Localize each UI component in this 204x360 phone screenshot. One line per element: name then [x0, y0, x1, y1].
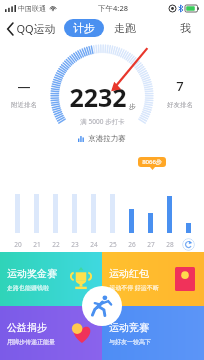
staticText: 中国联通	[18, 4, 46, 13]
staticText: 运动不停 好运不断	[109, 284, 159, 292]
staticText: 2232	[69, 80, 127, 114]
button[interactable]: 我	[177, 19, 194, 37]
staticText: 满 5000 步打卡	[80, 117, 125, 126]
staticText: —	[17, 77, 31, 95]
button[interactable]: 公益捐步	[0, 306, 102, 360]
staticText: 24	[90, 240, 98, 249]
staticText: 计步	[73, 21, 95, 35]
staticText: 运动竞赛	[109, 321, 149, 334]
staticText: 走路也能赚钱啦	[7, 284, 49, 292]
staticText: 运动红包	[109, 267, 149, 280]
staticText: 公益捐步	[7, 321, 47, 334]
staticText: 20	[14, 240, 22, 249]
staticText: 京港拉力赛	[88, 134, 126, 143]
staticText: 23	[71, 240, 79, 249]
button[interactable]: 计步	[64, 19, 104, 37]
staticText: 7	[176, 77, 184, 95]
staticText: 28	[166, 240, 174, 249]
staticText: 用脚步传递正能量	[7, 338, 55, 346]
button[interactable]: 走跑	[111, 19, 139, 37]
staticText: 我	[180, 21, 191, 35]
staticText: 22	[52, 240, 60, 249]
staticText: 26	[128, 240, 136, 249]
staticText: 附近排名	[11, 101, 37, 109]
button[interactable]: Start running	[82, 286, 122, 326]
staticText: 21	[33, 240, 41, 249]
staticText: 与好友一较高下	[109, 338, 151, 346]
staticText: 运动奖金赛	[7, 267, 57, 280]
button[interactable]: Sync	[182, 238, 195, 251]
staticText: 27	[147, 240, 155, 249]
staticText: 25	[109, 240, 117, 249]
button[interactable]: Back to QQ运动	[4, 19, 59, 38]
staticText: 步	[129, 102, 136, 111]
staticText: 好友排名	[167, 101, 193, 109]
staticText: 8066步	[142, 158, 162, 166]
staticText: 下午4:28	[98, 3, 128, 13]
button[interactable]: 运动竞赛	[102, 306, 204, 360]
staticText: 走跑	[114, 21, 136, 35]
button[interactable]: 运动奖金赛	[0, 252, 102, 306]
button[interactable]: 运动红包	[102, 252, 204, 306]
staticText: QQ运动	[16, 21, 56, 36]
button[interactable]: 京港拉力赛	[69, 131, 135, 146]
